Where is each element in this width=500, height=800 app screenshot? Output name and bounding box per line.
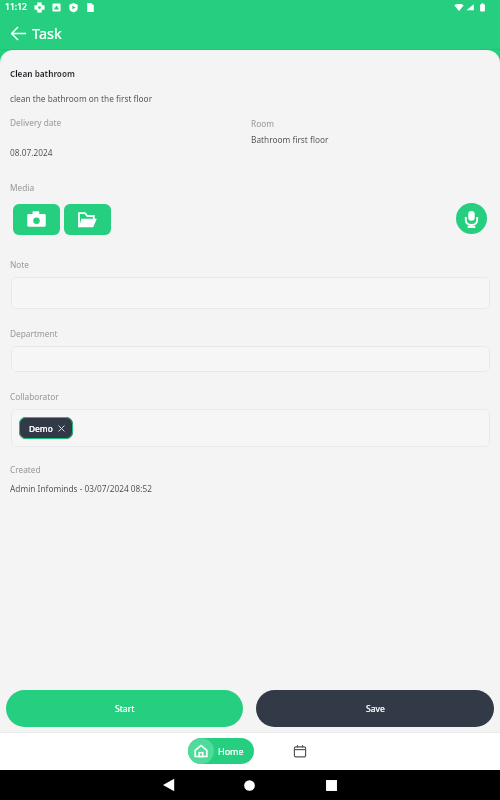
staticText: Note [10,259,30,270]
staticText: Demo [29,423,53,434]
staticText: Media [10,182,35,193]
button[interactable]: Back [6,21,30,45]
button[interactable]: Remove Demo [56,423,66,433]
staticText: Clean bathroom [10,68,75,79]
button[interactable]: Recent apps [305,770,357,800]
staticText: Admin Infominds - 03/07/2024 08:52 [10,483,152,494]
button[interactable]: Record voice note [456,203,487,234]
staticText: Start [115,703,135,715]
staticText: Collaborator [10,391,59,402]
staticText: 11:12 [5,1,28,13]
staticText: Task [32,23,62,43]
staticText: Home [218,745,244,757]
button[interactable] [11,277,490,309]
staticText: Department [10,328,58,339]
button[interactable]: Home [223,770,275,800]
staticText: Bathroom first floor [251,134,329,145]
button[interactable]: Calendar [288,739,312,763]
staticText: 08.07.2024 [10,147,53,158]
staticText: Save [366,703,385,715]
staticText: Delivery date [10,117,62,128]
button[interactable]: Back [143,770,195,800]
button[interactable]: Take photo [13,204,60,235]
button[interactable] [11,409,490,447]
button[interactable]: Demo [19,417,73,439]
staticText: Room [251,118,274,129]
button[interactable]: Save [256,690,494,727]
button[interactable]: Attach file [64,204,111,235]
staticText: Created [10,464,41,475]
button[interactable]: Home [188,738,254,764]
button[interactable] [11,346,490,372]
button[interactable]: Start [6,690,243,727]
staticText: clean the bathroom on the first floor [10,93,153,104]
